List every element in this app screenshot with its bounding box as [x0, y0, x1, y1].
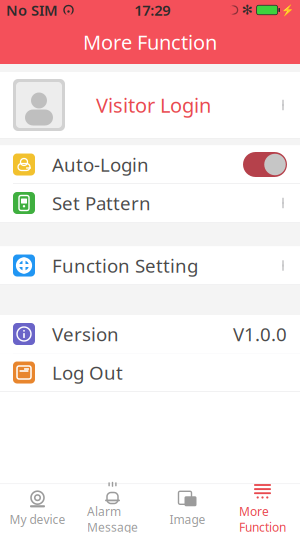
- button[interactable]: Set Pattern: [0, 184, 300, 222]
- staticText: Version: [52, 322, 119, 346]
- staticText: V1.0.0: [233, 322, 287, 346]
- staticText: Log Out: [52, 360, 123, 385]
- staticText: Alarm Message: [87, 503, 138, 533]
- staticText: Set Pattern: [52, 191, 151, 215]
- staticText: Auto-Login: [52, 152, 149, 177]
- button[interactable]: My device: [0, 484, 75, 532]
- button[interactable]: Alarm Message: [75, 484, 150, 532]
- staticText: Image: [169, 511, 205, 527]
- staticText: More Function: [239, 503, 286, 533]
- staticText: ✻: [242, 2, 253, 17]
- staticText: Visitor Login: [96, 92, 211, 118]
- button[interactable]: Image: [150, 484, 225, 532]
- staticText: More Function: [83, 29, 217, 55]
- staticText: My device: [9, 511, 65, 527]
- button[interactable]: Version: [0, 315, 300, 353]
- button[interactable]: More Function: [225, 484, 300, 532]
- button[interactable]: Function Setting: [0, 246, 300, 285]
- staticText: Function Setting: [52, 253, 198, 278]
- staticText: ⚡: [281, 4, 294, 16]
- staticText: 17:29: [134, 0, 170, 20]
- staticText: No SIM: [6, 0, 58, 20]
- button[interactable]: Auto-Login: [0, 145, 300, 184]
- button[interactable]: Visitor Login: [0, 72, 300, 138]
- button[interactable]: Log Out: [0, 353, 300, 392]
